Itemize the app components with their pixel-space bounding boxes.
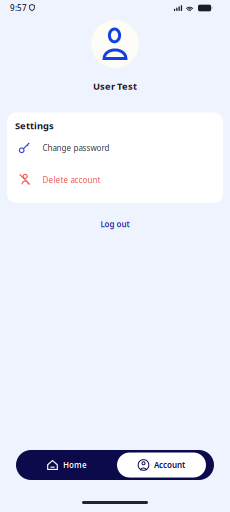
staticText: Home	[63, 460, 87, 470]
staticText: Account	[154, 460, 185, 470]
button[interactable]: Account	[117, 452, 206, 477]
staticText: 9:57	[10, 3, 27, 13]
staticText: Log out	[100, 219, 129, 229]
button[interactable]: Log out	[95, 214, 134, 234]
staticText: User Test	[93, 80, 137, 92]
staticText: Settings	[15, 119, 54, 132]
button[interactable]: Delete account	[7, 164, 223, 196]
staticText: Delete account	[42, 174, 100, 185]
button[interactable]: Change password	[7, 132, 223, 164]
staticText: Change password	[42, 142, 109, 153]
button[interactable]: Home	[17, 452, 117, 477]
